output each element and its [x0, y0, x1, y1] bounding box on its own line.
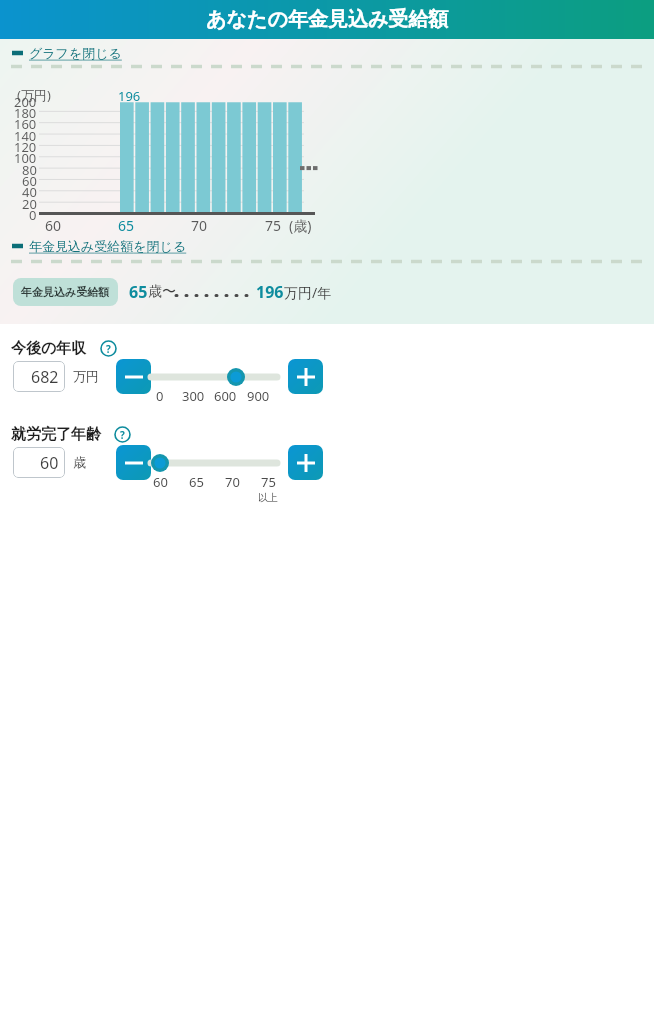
staticText: 万円/年 [284, 283, 332, 302]
staticText: 200 [14, 93, 37, 111]
staticText: ? [106, 342, 111, 356]
button[interactable]: ヘルプ [114, 426, 131, 443]
staticText: 60 [22, 172, 37, 190]
button[interactable]: スライダー [148, 456, 280, 470]
staticText: 75 [261, 473, 276, 491]
staticText: 300 [182, 387, 205, 405]
staticText: 年金見込み受給額 [21, 285, 110, 299]
staticText: (万円) [17, 86, 51, 104]
staticText: 600 [214, 387, 237, 405]
staticText: あなたの年金見込み受給額 [206, 7, 449, 32]
button[interactable]: 年金見込み受給額 [13, 278, 118, 306]
staticText: 120 [14, 138, 37, 156]
staticText: 60 [153, 473, 168, 491]
button[interactable]: 60 [13, 447, 65, 478]
staticText: ? [120, 428, 125, 442]
staticText: 歳〜 [148, 283, 176, 301]
staticText: 60 [45, 216, 62, 235]
staticText: 196 [256, 281, 284, 303]
staticText: 20 [22, 195, 37, 213]
button[interactable]: 減らす [116, 445, 151, 480]
staticText: 140 [14, 127, 37, 145]
staticText: 65 [129, 281, 148, 303]
staticText: 今後の年収 [11, 339, 87, 358]
staticText: 900 [247, 387, 270, 405]
staticText: 70 [191, 216, 208, 235]
staticText: 以上 [258, 491, 278, 504]
staticText: 年金見込み受給額を閉じる [29, 238, 187, 254]
staticText: 160 [14, 115, 37, 133]
staticText: グラフを閉じる [29, 45, 122, 61]
staticText: 180 [14, 104, 37, 122]
staticText: 65 [118, 216, 135, 235]
staticText: 75 [265, 216, 282, 235]
button[interactable]: ヘルプ [100, 340, 117, 357]
staticText: 196 [118, 87, 141, 105]
staticText: (歳) [289, 216, 312, 235]
staticText: 0 [29, 206, 37, 224]
button[interactable]: 減らす [116, 359, 151, 394]
staticText: 80 [22, 161, 37, 179]
button[interactable]: 増やす [288, 445, 323, 480]
button[interactable]: 年金見込み受給額を閉じる [7, 235, 191, 257]
staticText: 65 [189, 473, 204, 491]
staticText: 100 [14, 149, 37, 167]
staticText: 就労完了年齢 [11, 425, 101, 444]
button[interactable]: 増やす [288, 359, 323, 394]
staticText: 万円 [73, 368, 99, 384]
button[interactable]: スライダー [148, 370, 280, 384]
button[interactable]: 682 [13, 361, 65, 392]
staticText: 40 [22, 183, 37, 201]
staticText: 歳 [73, 454, 86, 470]
button[interactable]: グラフを閉じる [7, 42, 126, 64]
staticText: 0 [156, 387, 164, 405]
staticText: 70 [225, 473, 240, 491]
staticText: 60 [40, 452, 59, 474]
staticText: 682 [31, 366, 59, 388]
